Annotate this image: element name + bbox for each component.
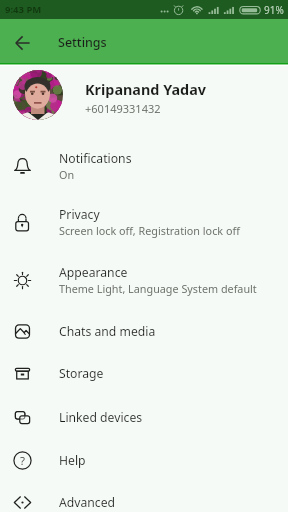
button[interactable]: Storage — [0, 352, 288, 395]
button[interactable]: Kripanand Yadav — [0, 64, 288, 136]
button[interactable]: Advanced — [0, 481, 288, 512]
staticText: Notifications — [59, 150, 132, 167]
staticText: Storage — [59, 365, 104, 382]
button[interactable]: Back — [8, 27, 36, 55]
staticText: Linked devices — [59, 409, 143, 426]
button[interactable]: Linked devices — [0, 396, 288, 439]
button[interactable]: Notifications — [0, 137, 288, 195]
staticText: Kripanand Yadav — [85, 80, 207, 100]
staticText: 9:43 PM — [5, 3, 42, 16]
staticText: On — [59, 167, 75, 182]
staticText: Settings — [58, 34, 107, 51]
staticText: Help — [59, 452, 86, 469]
staticText: Advanced — [59, 494, 116, 511]
button[interactable]: ? — [0, 439, 288, 482]
staticText: Appearance — [59, 264, 128, 281]
staticText: ? — [20, 453, 25, 469]
staticText: +60149331432 — [85, 101, 161, 116]
staticText: 91% — [264, 3, 284, 17]
staticText: Screen lock off, Registration lock off — [59, 223, 240, 238]
button[interactable]: Chats and media — [0, 310, 288, 353]
button[interactable]: Appearance — [0, 251, 288, 309]
staticText: Theme Light, Language System default — [59, 281, 257, 296]
staticText: Chats and media — [59, 323, 156, 340]
staticText: Privacy — [59, 206, 100, 223]
button[interactable]: Privacy — [0, 193, 288, 251]
